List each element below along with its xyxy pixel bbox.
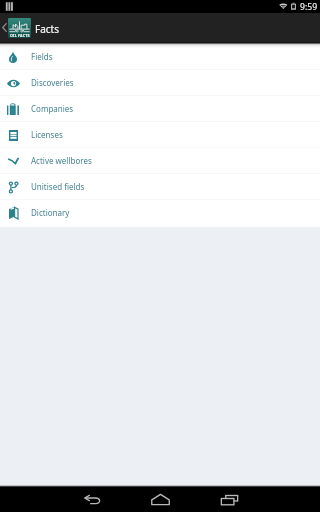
button[interactable]: Back: [76, 487, 108, 512]
staticText: Dictionary: [31, 207, 70, 218]
staticText: Fields: [31, 51, 53, 62]
button[interactable]: Recent apps: [213, 487, 245, 512]
staticText: Facts: [35, 22, 59, 36]
staticText: OIL FACTS: [10, 33, 30, 38]
staticText: Licenses: [31, 129, 63, 140]
button[interactable]: Home: [144, 487, 176, 512]
button[interactable]: Licenses: [0, 122, 320, 148]
button[interactable]: Dictionary: [0, 200, 320, 226]
staticText: Companies: [31, 103, 74, 114]
staticText: Discoveries: [31, 77, 74, 88]
button[interactable]: Companies: [0, 96, 320, 122]
button[interactable]: Active wellbores: [0, 148, 320, 174]
button[interactable]: Discoveries: [0, 70, 320, 96]
button[interactable]: Unitised fields: [0, 174, 320, 200]
staticText: 9:59: [300, 1, 318, 13]
button[interactable]: Navigate up: [0, 13, 8, 42]
button[interactable]: Fields: [0, 44, 320, 70]
staticText: Active wellbores: [31, 155, 92, 166]
staticText: Unitised fields: [31, 181, 85, 192]
